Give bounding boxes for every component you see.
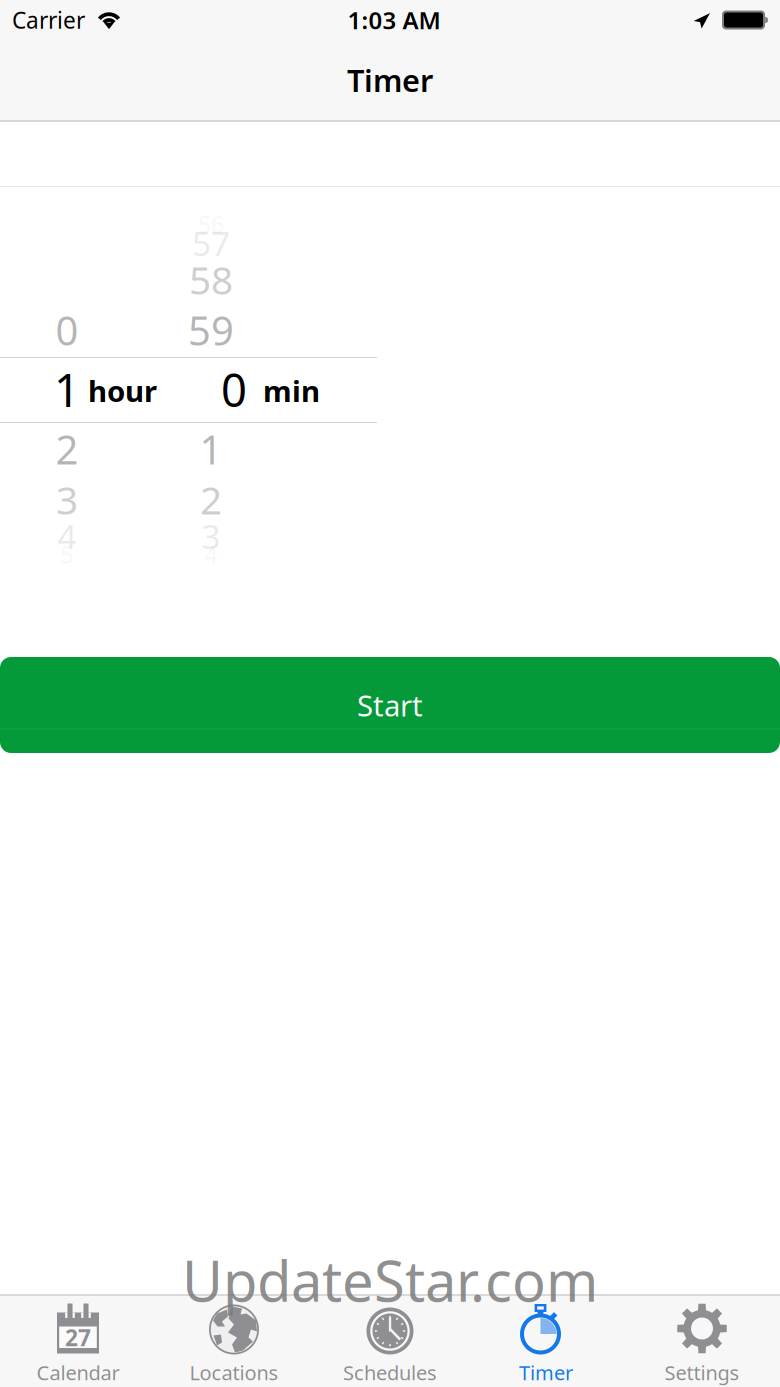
staticText: 3: [201, 514, 220, 558]
staticText: 3: [56, 474, 78, 525]
staticText: min: [263, 371, 320, 410]
staticText: 56: [198, 209, 224, 239]
staticText: Start: [357, 685, 423, 724]
staticText: Timer: [519, 1359, 573, 1386]
staticText: 1: [54, 359, 80, 420]
staticText: Locations: [189, 1359, 278, 1386]
staticText: 1:03 AM: [347, 4, 440, 36]
staticText: 2: [200, 474, 222, 525]
staticText: 4: [57, 514, 76, 558]
staticText: 2: [55, 422, 78, 475]
staticText: UpdateStar.com: [182, 1243, 598, 1317]
staticText: 0: [221, 359, 247, 420]
staticText: Calendar: [36, 1359, 119, 1386]
staticText: 27: [65, 1322, 91, 1352]
staticText: 58: [189, 254, 233, 305]
staticText: 5: [60, 539, 73, 569]
staticText: 57: [192, 221, 230, 265]
button[interactable]: Schedules: [312, 1294, 468, 1387]
button[interactable]: Locations: [156, 1294, 312, 1387]
staticText: 1: [199, 422, 222, 475]
button[interactable]: Start: [0, 657, 780, 753]
button[interactable]: Settings: [624, 1294, 780, 1387]
staticText: 59: [188, 303, 234, 356]
button[interactable]: 27: [0, 1294, 156, 1387]
staticText: Timer: [347, 60, 433, 100]
staticText: 0: [55, 303, 78, 356]
staticText: 4: [204, 539, 217, 569]
button[interactable]: 0: [188, 357, 377, 421]
staticText: Schedules: [343, 1359, 437, 1386]
staticText: hour: [88, 371, 157, 410]
button[interactable]: 1: [0, 357, 188, 421]
staticText: Carrier: [12, 5, 85, 35]
button[interactable]: Timer: [468, 1294, 624, 1387]
staticText: Settings: [664, 1359, 739, 1386]
